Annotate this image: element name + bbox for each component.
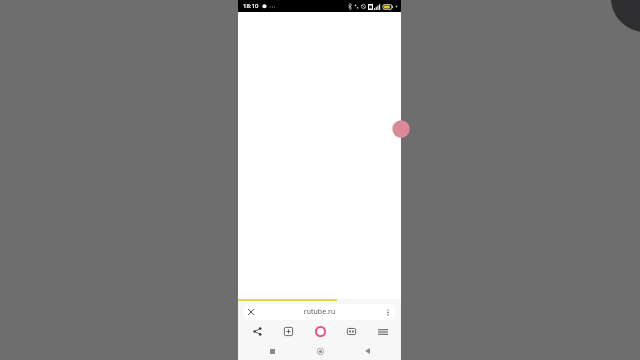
button[interactable]: More options (380, 304, 396, 320)
staticText: 18:10 (243, 2, 259, 10)
button[interactable]: Tabs (338, 322, 364, 341)
button[interactable]: Recents (259, 342, 285, 360)
staticText: rutube.ru (259, 307, 380, 317)
button[interactable]: Stop loading (243, 304, 396, 320)
button[interactable]: Menu (370, 322, 396, 341)
button[interactable]: Share (244, 322, 270, 341)
button[interactable]: New tab (275, 322, 301, 341)
button[interactable]: Stop loading (243, 304, 259, 320)
button[interactable]: Opera menu (307, 322, 333, 341)
button[interactable]: Back (354, 342, 380, 360)
button[interactable]: Home (307, 342, 333, 360)
